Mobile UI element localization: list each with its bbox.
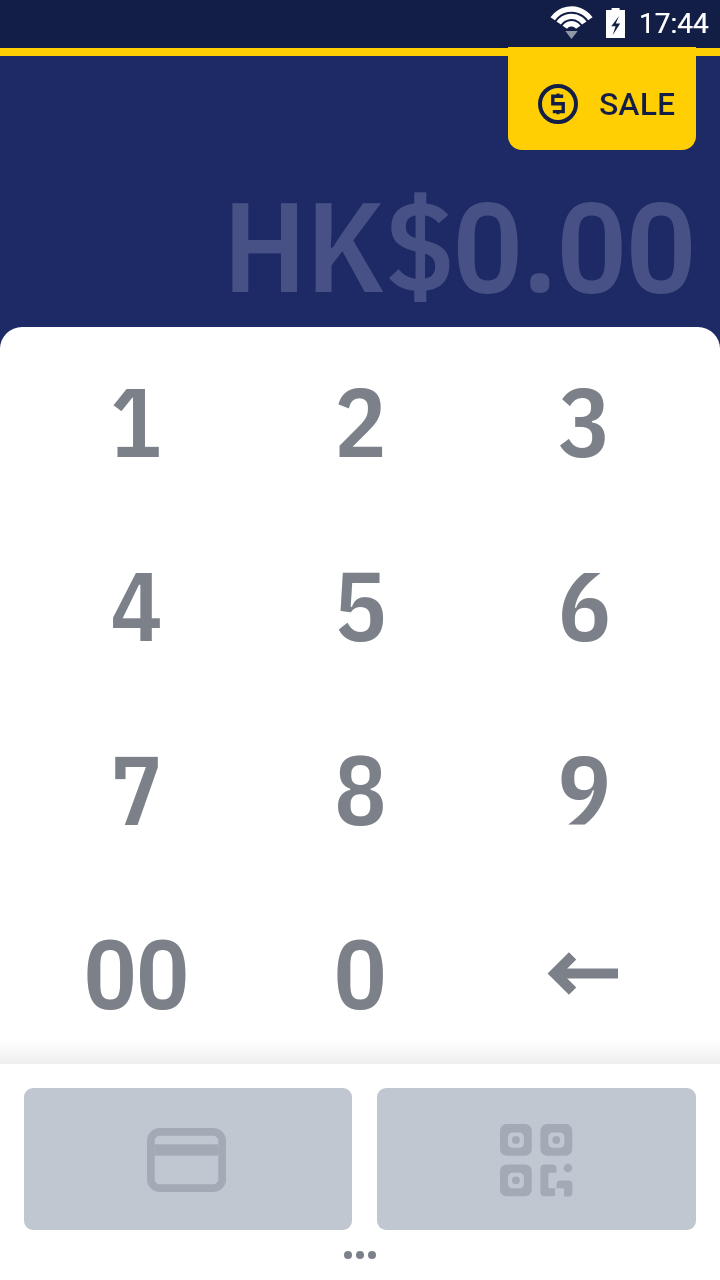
staticText: 00 [84, 910, 189, 1036]
button[interactable]: More payment options [344, 1251, 376, 1259]
staticText: 17:44 [639, 7, 709, 40]
button[interactable]: Backspace [472, 881, 696, 1065]
staticText: 1 [110, 358, 163, 484]
button[interactable]: 4 [24, 513, 248, 697]
staticText: SALE [599, 85, 676, 123]
staticText: 6 [558, 542, 611, 668]
button[interactable]: 00 [24, 881, 248, 1065]
staticText: HK$0.00 [223, 161, 696, 327]
button[interactable]: 8 [248, 697, 472, 881]
button[interactable]: 7 [24, 697, 248, 881]
button[interactable]: 0 [248, 881, 472, 1065]
staticText: 8 [334, 726, 387, 852]
button[interactable]: Card payment [24, 1088, 352, 1230]
staticText: 4 [110, 542, 163, 668]
button[interactable]: 9 [472, 697, 696, 881]
staticText: 2 [334, 358, 387, 484]
button[interactable]: 1 [24, 329, 248, 513]
button[interactable]: 6 [472, 513, 696, 697]
button[interactable]: 5 [248, 513, 472, 697]
staticText: 7 [110, 726, 163, 852]
button[interactable]: QR code payment [377, 1088, 696, 1230]
button[interactable]: 2 [248, 329, 472, 513]
staticText: 9 [558, 726, 611, 852]
button[interactable]: SALE [508, 47, 696, 150]
staticText: 3 [558, 358, 611, 484]
staticText: 5 [334, 542, 387, 668]
staticText: 0 [334, 910, 387, 1036]
button[interactable]: 3 [472, 329, 696, 513]
